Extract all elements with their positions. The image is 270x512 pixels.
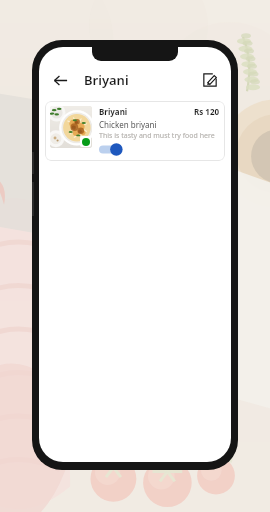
button[interactable]	[99, 143, 125, 156]
staticText: Chicken briyani	[99, 119, 157, 130]
staticText: This is tasty and must try food here	[99, 131, 215, 141]
staticText: Rs 120	[194, 106, 220, 117]
staticText: Briyani	[84, 71, 129, 89]
button[interactable]: Edit	[198, 68, 222, 92]
staticText: Briyani	[99, 106, 128, 117]
button[interactable]: Briyani	[45, 101, 225, 161]
button[interactable]: Back	[48, 68, 72, 92]
